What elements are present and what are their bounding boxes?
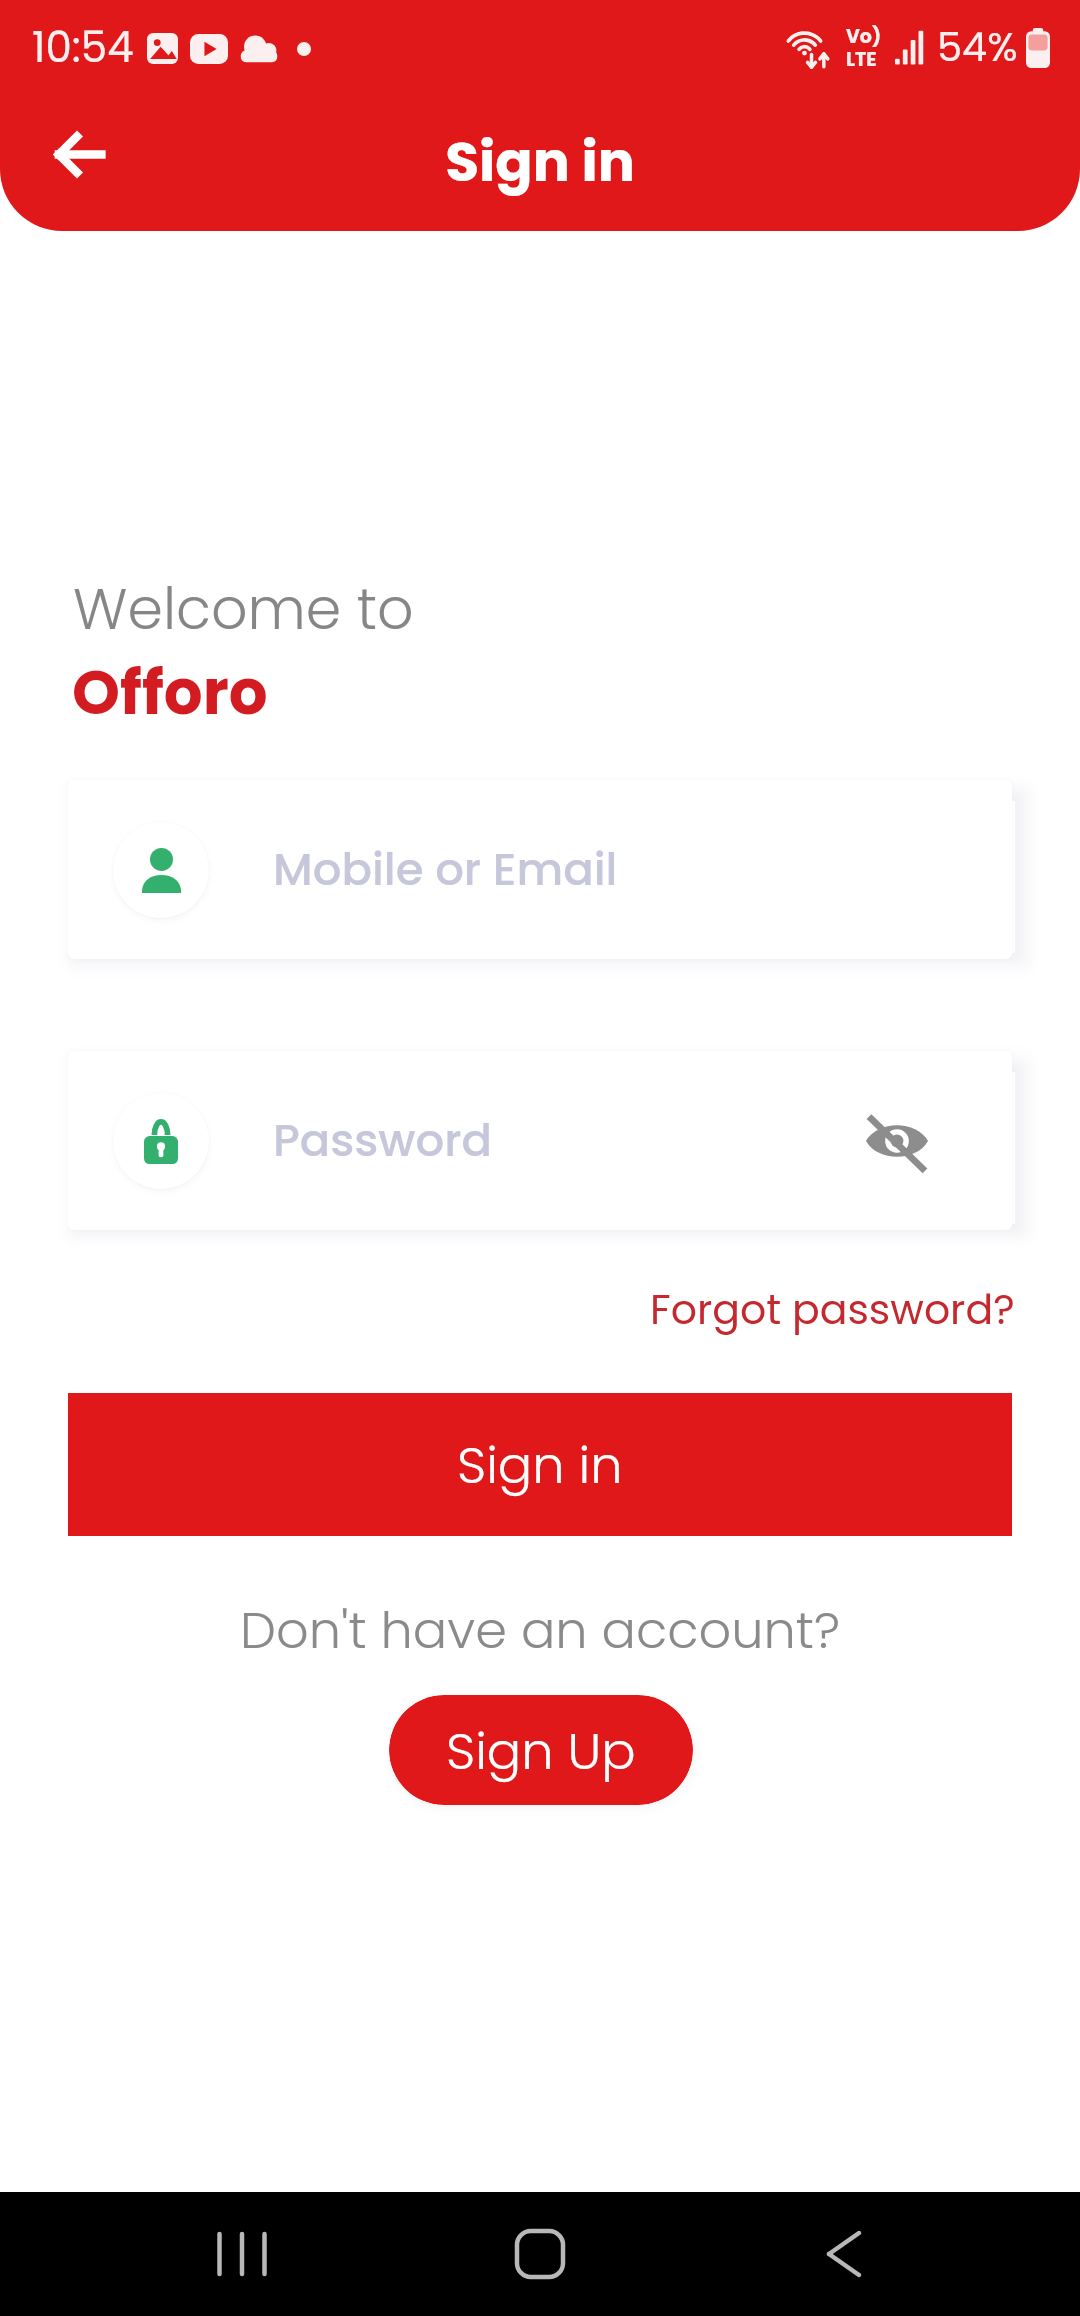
staticText: Sign Up xyxy=(446,1715,636,1786)
button[interactable]: Show password xyxy=(851,1095,943,1187)
staticText: Mobile or Email xyxy=(273,838,618,901)
staticText: Vo) xyxy=(846,23,882,50)
button[interactable]: Home xyxy=(478,2192,602,2316)
button[interactable]: Recents xyxy=(180,2192,304,2316)
staticText: Don't have an account? xyxy=(0,1594,1080,1665)
staticText: 10:54 xyxy=(32,18,134,77)
staticText: Forgot password? xyxy=(650,1281,1015,1338)
button[interactable]: Password xyxy=(68,1051,1012,1230)
staticText: 54% xyxy=(937,19,1018,75)
staticText: Welcome to xyxy=(73,569,414,649)
staticText: Password xyxy=(273,1109,492,1172)
staticText: Offoro xyxy=(72,650,268,735)
staticText: Sign in xyxy=(457,1429,623,1500)
staticText: Sign in xyxy=(0,123,1080,200)
button[interactable]: Mobile or Email xyxy=(68,780,1012,959)
button[interactable]: Forgot password? xyxy=(640,1272,1024,1346)
staticText: LTE xyxy=(846,46,877,73)
button[interactable]: Back xyxy=(23,98,135,210)
button[interactable]: Back xyxy=(782,2192,906,2316)
button[interactable]: Sign Up xyxy=(389,1695,693,1805)
button[interactable]: Sign in xyxy=(68,1393,1012,1536)
